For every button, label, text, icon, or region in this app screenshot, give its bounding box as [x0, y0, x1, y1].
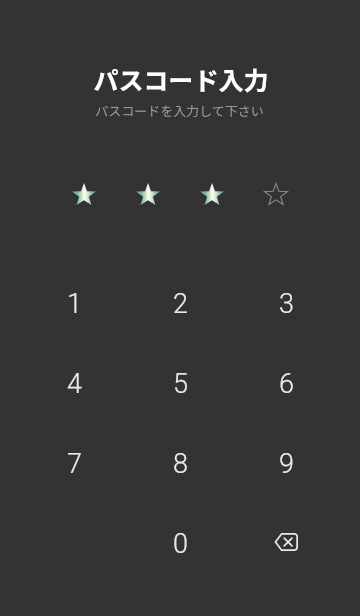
staticText: 6	[279, 368, 294, 400]
button[interactable]: 4	[21, 344, 127, 424]
button[interactable]: 8	[127, 424, 233, 504]
button[interactable]: 1	[21, 264, 127, 344]
staticText: パスコードを入力して下さい	[95, 101, 264, 120]
button[interactable]: 7	[21, 424, 127, 504]
staticText: 7	[67, 448, 82, 480]
staticText: 8	[173, 448, 188, 480]
staticText: 4	[67, 368, 82, 400]
staticText: 5	[173, 368, 188, 400]
staticText: 2	[173, 288, 188, 320]
staticText: パスコード入力	[93, 61, 269, 97]
button[interactable]: 0	[127, 504, 233, 584]
button[interactable]: 3	[233, 264, 339, 344]
staticText: 9	[279, 448, 294, 480]
button[interactable]: 5	[127, 344, 233, 424]
button[interactable]: 2	[127, 264, 233, 344]
button[interactable]: 9	[233, 424, 339, 504]
button[interactable]: Backspace, delete last digit	[233, 504, 339, 584]
staticText: 0	[173, 528, 188, 560]
button[interactable]: 6	[233, 344, 339, 424]
staticText: 3	[279, 288, 294, 320]
staticText: 1	[67, 288, 82, 320]
